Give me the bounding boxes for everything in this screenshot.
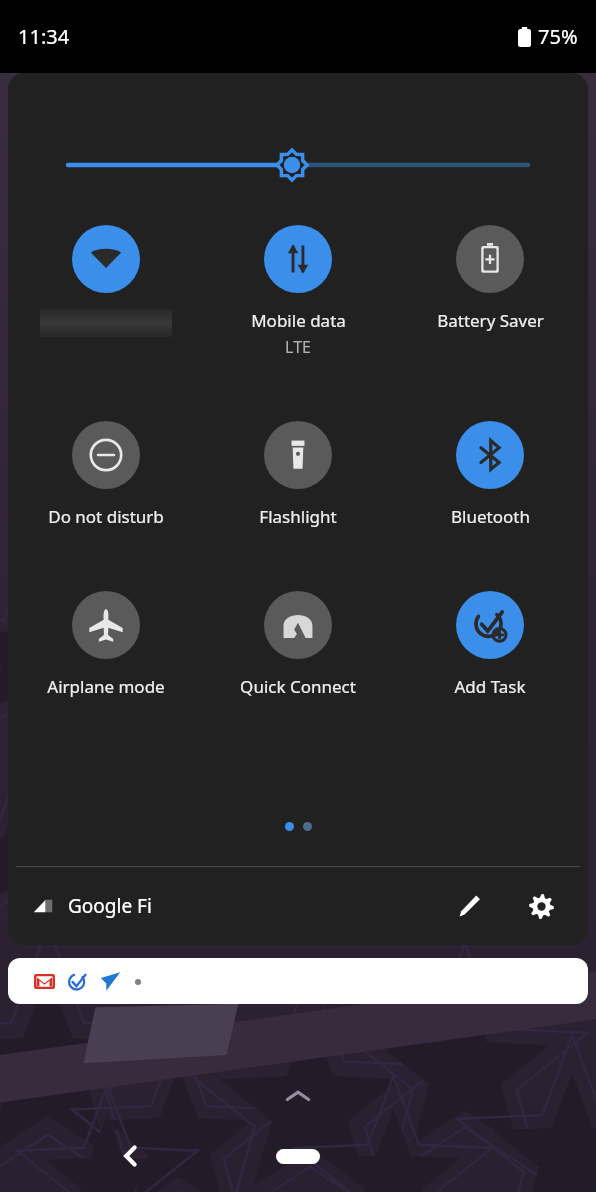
button[interactable]: Back: [116, 1141, 146, 1171]
staticText: LTE: [285, 336, 311, 358]
staticText: Add Task: [454, 675, 526, 698]
button[interactable]: [8, 958, 588, 1004]
staticText: Mobile data: [251, 309, 346, 332]
button[interactable]: Edit: [446, 883, 492, 929]
button[interactable]: Flashlight: [204, 421, 392, 528]
button[interactable]: Home: [276, 1149, 320, 1164]
staticText: Flashlight: [259, 505, 337, 528]
staticText: 11:34: [18, 23, 70, 50]
staticText: 75%: [538, 23, 578, 50]
staticText: Airplane mode: [47, 675, 165, 698]
button[interactable]: Airplane mode: [12, 591, 200, 698]
button[interactable]: Battery Saver: [396, 225, 584, 332]
button[interactable]: Add Task: [396, 591, 584, 698]
button[interactable]: Expand: [284, 1088, 312, 1104]
staticText: Bluetooth: [451, 505, 530, 528]
button[interactable]: Do not disturb: [12, 421, 200, 528]
staticText: Google Fi: [68, 893, 152, 919]
button[interactable]: Google Fi: [32, 893, 152, 919]
button[interactable]: [8, 145, 588, 185]
staticText: Battery Saver: [437, 309, 544, 332]
staticText: Do not disturb: [48, 505, 164, 528]
button[interactable]: Bluetooth: [396, 421, 584, 528]
button[interactable]: Mobile data: [204, 225, 392, 358]
button[interactable]: Settings: [518, 883, 564, 929]
staticText: Quick Connect: [240, 675, 356, 698]
button[interactable]: Quick Connect: [204, 591, 392, 698]
button[interactable]: Wi-Fi: [12, 225, 200, 337]
